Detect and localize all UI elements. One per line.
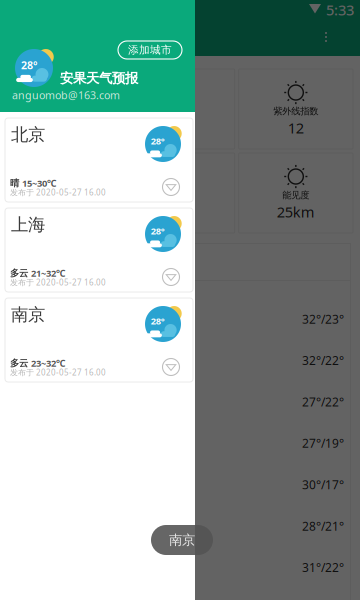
staticText: 紫外线指数	[273, 105, 318, 117]
staticText: 北京	[11, 124, 45, 145]
staticText: 上海	[11, 214, 45, 235]
staticText: 3级	[166, 202, 189, 221]
staticText: 发布于 2020-05-27 16.00	[10, 277, 106, 288]
staticText: 南京	[11, 304, 45, 325]
staticText: 23~32℃	[31, 357, 65, 369]
staticText: 28°	[21, 58, 38, 72]
staticText: 27°/19°	[302, 435, 344, 451]
button[interactable]: 上海	[5, 208, 193, 292]
staticText: 21~32℃	[31, 267, 65, 279]
staticText: 28°	[151, 225, 165, 237]
staticText: 55%	[163, 118, 191, 137]
staticText: 安果天气预报	[60, 70, 138, 86]
staticText: 32°/23°	[302, 311, 344, 327]
staticText: 1003	[43, 202, 75, 221]
staticText: 风速	[168, 189, 186, 201]
staticText: anguomob@163.com	[12, 88, 120, 102]
button[interactable]: 北京	[5, 118, 193, 202]
staticText: 南京	[169, 532, 195, 548]
staticText: 气压	[50, 189, 68, 201]
staticText: 晴	[10, 177, 19, 189]
button[interactable]: 南京	[5, 298, 193, 382]
staticText: 30°/17°	[302, 477, 344, 492]
staticText: 25km	[277, 202, 315, 221]
staticText: 28°	[151, 315, 165, 327]
staticText: 28°/21°	[302, 518, 344, 534]
staticText: 发布于 2020-05-27 16.00	[10, 187, 106, 198]
staticText: 32°/22°	[302, 352, 344, 368]
staticText: 多云	[10, 357, 28, 369]
staticText: 12	[288, 118, 304, 137]
staticText: 能见度	[282, 189, 309, 201]
staticText: 15~30℃	[22, 177, 56, 189]
staticText: 28°	[151, 135, 165, 147]
button[interactable]: 添加城市	[118, 41, 182, 59]
staticText: 31°/22°	[302, 559, 344, 575]
staticText: 多云	[10, 267, 28, 279]
staticText: 体感温度	[41, 105, 77, 117]
staticText: 27°/22°	[302, 394, 344, 410]
staticText: 添加城市	[128, 43, 172, 56]
staticText: 发布于 2020-05-27 16.00	[10, 367, 106, 378]
staticText: 湿度	[168, 105, 186, 117]
staticText: 5:33	[326, 0, 354, 19]
